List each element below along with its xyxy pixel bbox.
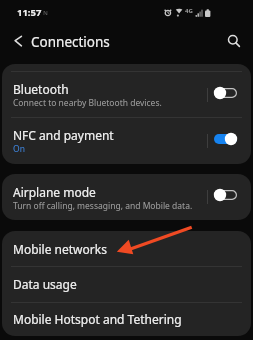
button[interactable]: Back xyxy=(6,30,28,52)
staticText: Airplane mode xyxy=(13,184,96,200)
button[interactable]: Mobile Hotspot and Tethering xyxy=(2,302,251,336)
button[interactable]: Turn on xyxy=(214,86,237,100)
staticText: Mobile Hotspot and Tethering xyxy=(13,311,182,327)
staticText: Connections xyxy=(31,33,110,51)
button[interactable]: Bluetooth xyxy=(2,71,251,118)
button[interactable]: Data usage xyxy=(2,266,251,302)
staticText: Connect to nearby Bluetooth devices. xyxy=(13,97,162,109)
button[interactable]: Airplane mode xyxy=(2,174,251,220)
staticText: On xyxy=(13,143,25,155)
staticText: Data usage xyxy=(13,276,77,292)
button[interactable]: Mobile networks xyxy=(2,231,251,266)
staticText: Turn off calling, messaging, and Mobile … xyxy=(13,200,193,212)
staticText: N xyxy=(43,9,48,17)
staticText: 4G xyxy=(185,7,193,15)
staticText: NFC and payment xyxy=(13,127,114,143)
staticText: Mobile networks xyxy=(13,241,107,257)
button[interactable]: NFC and payment xyxy=(2,117,251,164)
staticText: Bluetooth xyxy=(13,81,69,97)
button[interactable]: Turn on xyxy=(214,188,237,202)
button[interactable]: Search xyxy=(222,29,244,51)
button[interactable]: Turn off xyxy=(214,132,237,146)
staticText: 11:57 xyxy=(17,6,42,19)
